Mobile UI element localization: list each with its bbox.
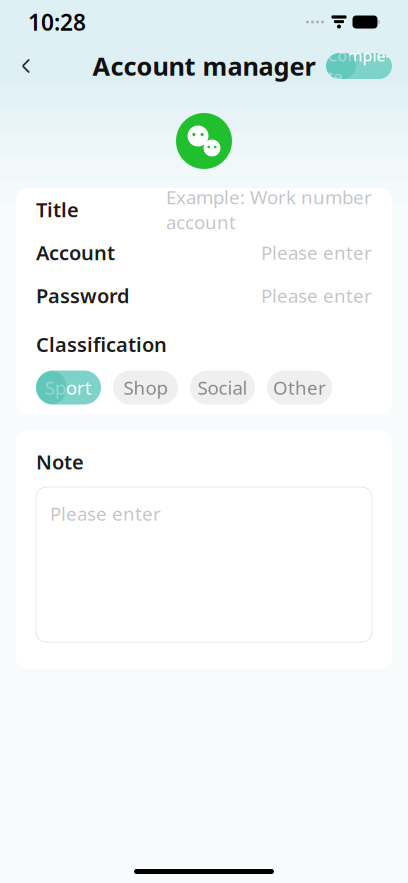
staticText: Classification xyxy=(36,331,167,358)
button[interactable]: Please enter xyxy=(36,487,372,642)
staticText: Account manager xyxy=(92,49,315,83)
staticText: Sport xyxy=(45,375,92,400)
button[interactable]: Back xyxy=(4,44,48,88)
staticText: Shop xyxy=(123,375,167,400)
button[interactable]: Social xyxy=(190,371,255,405)
button[interactable]: Shop xyxy=(113,371,178,405)
staticText: Complete xyxy=(327,45,390,87)
staticText: Title xyxy=(36,196,79,223)
staticText: Note xyxy=(36,449,84,475)
staticText: Please enter xyxy=(261,240,372,265)
staticText: Account xyxy=(36,239,115,266)
staticText: 10:28 xyxy=(28,7,86,37)
button[interactable]: Sport xyxy=(36,371,101,405)
staticText: Example: Work number account xyxy=(166,185,372,234)
staticText: Please enter xyxy=(261,283,372,308)
button[interactable]: Other xyxy=(267,371,332,405)
staticText: Password xyxy=(36,282,130,309)
button[interactable]: Complete xyxy=(326,53,392,79)
staticText: Other xyxy=(273,375,326,400)
staticText: Social xyxy=(197,375,247,400)
staticText: Please enter xyxy=(50,501,161,526)
